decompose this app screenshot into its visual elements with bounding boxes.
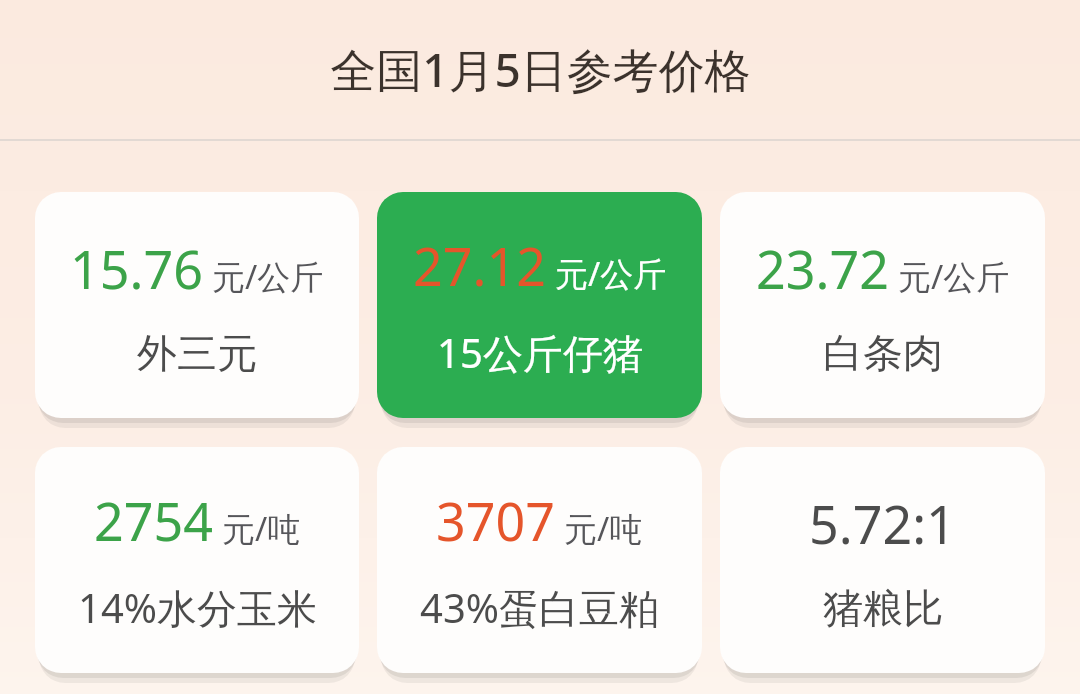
staticText: 23.72	[756, 233, 889, 304]
button[interactable]: 15.76	[35, 192, 359, 418]
button[interactable]: 23.72	[720, 192, 1045, 418]
staticText: 元/公斤	[555, 251, 667, 296]
staticText: 15.76	[70, 233, 203, 304]
staticText: 15公斤仔猪	[437, 325, 643, 380]
staticText: 白条肉	[823, 328, 943, 378]
staticText: 14%水分玉米	[78, 580, 317, 635]
button[interactable]: 3707	[377, 447, 702, 673]
button[interactable]: 2754	[35, 447, 359, 673]
staticText: 5.72:1	[809, 488, 956, 559]
staticText: 猪粮比	[823, 583, 943, 633]
staticText: 元/公斤	[898, 254, 1010, 299]
button[interactable]: 27.12	[377, 192, 702, 418]
staticText: 元/公斤	[212, 254, 324, 299]
staticText: 2754	[94, 485, 213, 556]
staticText: 元/吨	[564, 506, 643, 551]
staticText: 27.12	[413, 230, 546, 301]
staticText: 3707	[436, 485, 555, 556]
staticText: 全国1月5日参考价格	[330, 38, 751, 101]
staticText: 外三元	[137, 328, 257, 378]
staticText: 43%蛋白豆粕	[420, 580, 659, 635]
button[interactable]: 5.72:1	[720, 447, 1045, 673]
staticText: 元/吨	[222, 506, 301, 551]
